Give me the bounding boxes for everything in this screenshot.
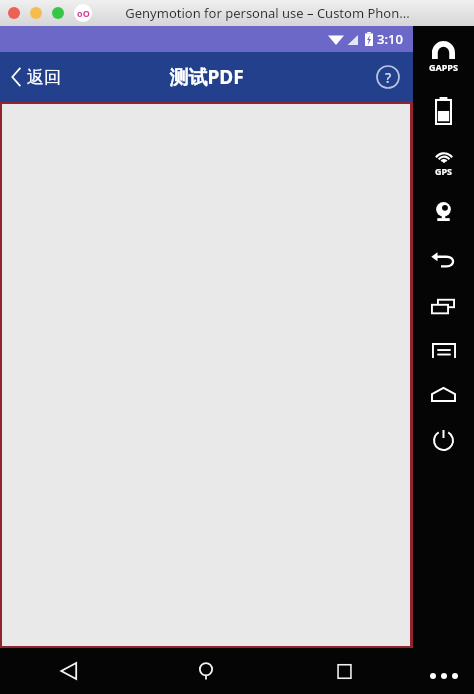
button[interactable]: Help [363,52,413,102]
button[interactable]: Menu [413,342,474,360]
button[interactable]: Window button [30,7,42,19]
button[interactable]: GAPPS [413,40,474,74]
staticText: oO [77,7,90,19]
button[interactable]: Camera [413,200,474,224]
button[interactable]: Genymotion [74,4,92,22]
button[interactable]: Battery [413,96,474,126]
button[interactable]: Home [137,648,275,694]
staticText: GPS [435,165,453,177]
button[interactable]: 返回 [0,52,75,102]
staticText: 返回 [27,67,61,88]
button[interactable]: Back [413,250,474,270]
button[interactable]: Recents [275,648,413,694]
button[interactable]: Window button [8,7,20,19]
button[interactable]: More options [413,672,474,680]
button[interactable]: Window button [52,7,64,19]
button[interactable]: Home [413,386,474,403]
button[interactable]: Back [0,648,137,694]
button[interactable]: GPS [413,148,474,178]
staticText: 3:10 [377,30,403,48]
button[interactable]: Power [413,427,474,454]
button[interactable]: Recents [413,296,474,316]
staticText: Genymotion for personal use – Custom Pho… [125,4,410,22]
staticText: 测试PDF [169,64,244,90]
staticText: GAPPS [429,61,458,73]
staticText: ? [385,68,392,87]
